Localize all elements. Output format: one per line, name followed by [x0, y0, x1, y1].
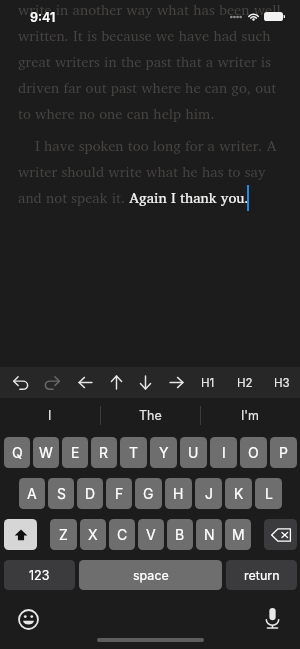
- staticText: B: [175, 526, 185, 543]
- button[interactable]: H1: [192, 367, 224, 398]
- staticText: K: [234, 485, 244, 502]
- button[interactable]: Z: [50, 519, 77, 550]
- button[interactable]: G: [135, 478, 162, 509]
- staticText: C: [117, 526, 128, 543]
- staticText: I: [222, 444, 226, 461]
- staticText: return: [244, 568, 280, 583]
- staticText: S: [57, 485, 66, 502]
- staticText: T: [129, 444, 139, 461]
- button[interactable]: X: [80, 519, 106, 550]
- button[interactable]: F: [106, 478, 132, 509]
- other: Undo: [12, 374, 29, 391]
- staticText: Y: [159, 444, 169, 461]
- button[interactable]: I: [210, 437, 237, 468]
- staticText: Z: [59, 526, 68, 543]
- staticText: M: [232, 526, 245, 543]
- other: Move up: [108, 374, 125, 391]
- other: Redo: [44, 374, 61, 391]
- staticText: write in another way what has been well …: [18, 0, 283, 125]
- button[interactable]: 123: [4, 560, 75, 590]
- button[interactable]: O: [240, 437, 267, 468]
- staticText: 123: [29, 568, 50, 583]
- button[interactable]: V: [138, 519, 164, 550]
- button[interactable]: H: [165, 478, 192, 509]
- button[interactable]: Move left: [70, 367, 100, 398]
- staticText: P: [279, 444, 288, 461]
- staticText: I'm: [241, 408, 260, 423]
- button[interactable]: N: [196, 519, 222, 550]
- staticText: E: [71, 444, 80, 461]
- staticText: D: [85, 485, 96, 502]
- button[interactable]: E: [62, 437, 88, 468]
- button[interactable]: H2: [229, 367, 261, 398]
- button[interactable]: return: [226, 560, 297, 590]
- staticText: space: [133, 568, 169, 583]
- button[interactable]: I'm: [201, 398, 300, 432]
- button[interactable]: K: [225, 478, 252, 509]
- staticText: R: [99, 444, 109, 461]
- staticText: U: [188, 444, 199, 461]
- other: Move left: [77, 374, 94, 391]
- button[interactable]: Y: [150, 437, 177, 468]
- staticText: F: [115, 485, 124, 502]
- button[interactable]: B: [167, 519, 193, 550]
- other: Move down: [137, 374, 154, 391]
- button[interactable]: L: [255, 478, 282, 509]
- button[interactable]: S: [48, 478, 74, 509]
- button[interactable]: R: [91, 437, 117, 468]
- button[interactable]: Q: [4, 437, 30, 468]
- staticText: W: [39, 444, 53, 461]
- button[interactable]: The: [101, 398, 200, 432]
- staticText: 9:41: [30, 10, 56, 25]
- staticText: L: [265, 485, 273, 502]
- staticText: The: [139, 408, 162, 423]
- staticText: I: [48, 408, 52, 423]
- staticText: H: [173, 485, 184, 502]
- button[interactable]: M: [225, 519, 251, 550]
- button[interactable]: Backspace: [264, 519, 297, 550]
- staticText: N: [204, 526, 215, 543]
- button[interactable]: A: [19, 478, 45, 509]
- staticText: Q: [12, 444, 23, 461]
- staticText: A: [27, 485, 37, 502]
- button[interactable]: space: [79, 560, 222, 590]
- button[interactable]: Dictate: [254, 600, 290, 636]
- button[interactable]: C: [109, 519, 135, 550]
- staticText: G: [143, 485, 154, 502]
- button[interactable]: Undo: [5, 367, 35, 398]
- button[interactable]: Move up: [101, 367, 131, 398]
- other: Move right: [168, 374, 185, 391]
- button[interactable]: Emoji: [10, 601, 46, 637]
- button[interactable]: P: [270, 437, 297, 468]
- staticText: O: [248, 444, 259, 461]
- button[interactable]: Shift: [4, 519, 37, 550]
- staticText: I have spoken too long for a writer. A w…: [18, 134, 283, 209]
- button[interactable]: T: [120, 437, 147, 468]
- staticText: H1: [201, 376, 215, 390]
- button[interactable]: J: [195, 478, 222, 509]
- button[interactable]: D: [77, 478, 103, 509]
- staticText: X: [88, 526, 98, 543]
- button[interactable]: Move right: [161, 367, 191, 398]
- button[interactable]: H3: [266, 367, 298, 398]
- button[interactable]: Move down: [130, 367, 160, 398]
- staticText: V: [146, 526, 156, 543]
- button[interactable]: U: [180, 437, 207, 468]
- button[interactable]: Redo: [37, 367, 67, 398]
- button[interactable]: W: [33, 437, 59, 468]
- staticText: J: [205, 485, 213, 502]
- button[interactable]: I: [0, 398, 100, 432]
- staticText: H2: [237, 376, 253, 390]
- staticText: H3: [274, 376, 290, 390]
